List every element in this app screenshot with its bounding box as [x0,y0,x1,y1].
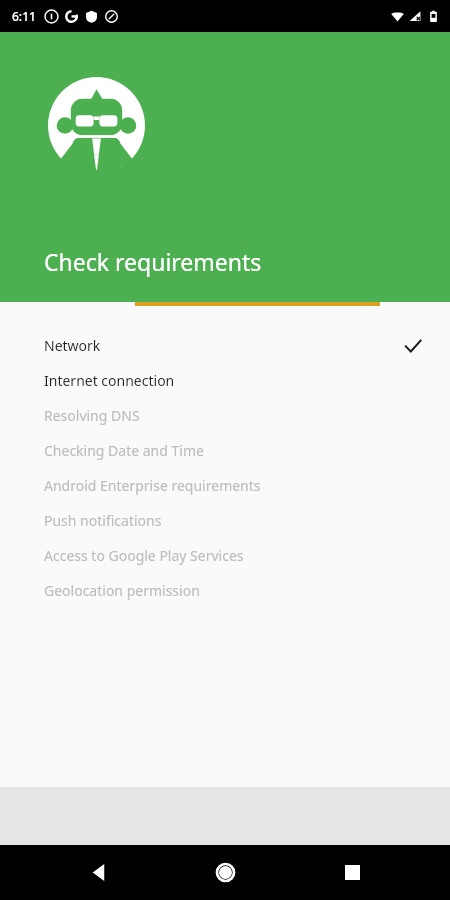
button[interactable]: Android Enterprise requirements [0,468,450,503]
button[interactable]: Push notifications [0,503,450,538]
button[interactable]: Home [197,845,253,900]
staticText: Push notifications [44,511,422,530]
staticText: Access to Google Play Services [44,546,422,565]
button[interactable]: Checking Date and Time [0,433,450,468]
button[interactable]: Back [71,845,127,900]
staticText: Checking Date and Time [44,441,422,460]
button[interactable]: Internet connection [0,363,450,398]
button[interactable]: Geolocation permission [0,573,450,608]
button[interactable]: Network [0,328,450,363]
staticText: 6:11 [12,8,36,24]
staticText: Internet connection [44,371,422,390]
staticText: Network [44,336,404,355]
button[interactable]: Resolving DNS [0,398,450,433]
staticText: Resolving DNS [44,406,422,425]
staticText: Android Enterprise requirements [44,476,422,495]
staticText: Check requirements [44,246,262,277]
staticText: Geolocation permission [44,581,422,600]
other: Completed [404,337,422,355]
button[interactable]: Access to Google Play Services [0,538,450,573]
button[interactable]: Recent apps [324,845,380,900]
